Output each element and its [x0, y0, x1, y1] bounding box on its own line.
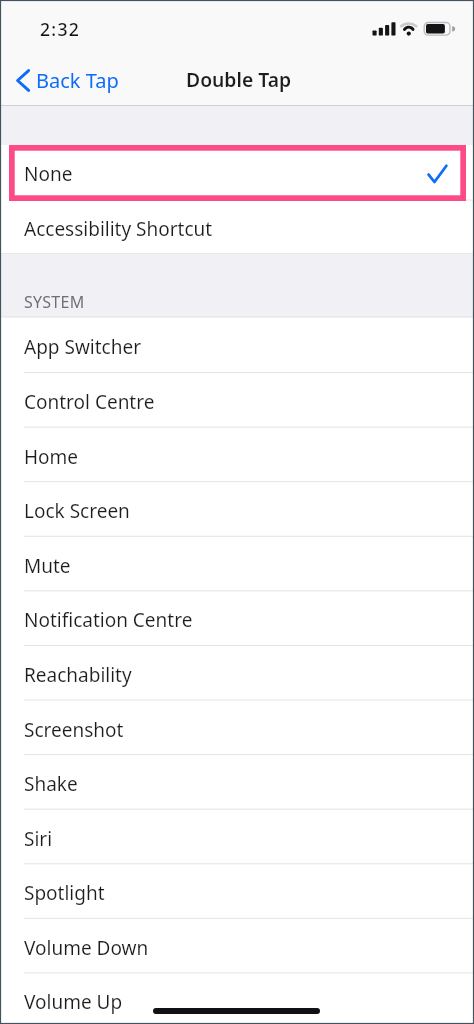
staticText: Home [24, 444, 79, 470]
staticText: Control Centre [24, 389, 155, 415]
button[interactable]: Mute [0, 536, 474, 591]
staticText: Mute [24, 553, 71, 579]
button[interactable]: Screenshot [0, 700, 474, 755]
button[interactable]: Volume Up [0, 972, 474, 1024]
staticText: Spotlight [24, 880, 105, 906]
staticText: Notification Centre [24, 607, 193, 633]
other: Selected [428, 165, 447, 183]
staticText: Volume Down [24, 935, 149, 961]
staticText: None [24, 161, 73, 187]
button[interactable]: Shake [0, 754, 474, 809]
staticText: 2:32 [40, 17, 81, 41]
button[interactable]: Control Centre [0, 372, 474, 427]
button[interactable]: Accessibility Shortcut [0, 200, 474, 255]
button[interactable]: Volume Down [0, 918, 474, 973]
staticText: Reachability [24, 662, 132, 688]
staticText: Siri [24, 826, 53, 852]
button[interactable]: Siri [0, 809, 474, 864]
button[interactable]: Notification Centre [0, 590, 474, 645]
staticText: Screenshot [24, 717, 124, 743]
button[interactable]: Spotlight [0, 863, 474, 918]
staticText: Double Tap [186, 66, 291, 92]
staticText: Volume Up [24, 989, 123, 1015]
staticText: Back Tap [36, 67, 119, 94]
staticText: SYSTEM [24, 291, 85, 313]
button[interactable]: Reachability [0, 645, 474, 700]
button[interactable]: App Switcher [0, 317, 474, 372]
staticText: Shake [24, 771, 78, 797]
button[interactable]: Back Tap [11, 63, 124, 97]
button[interactable]: Lock Screen [0, 481, 474, 536]
button[interactable]: Home [0, 427, 474, 482]
button[interactable]: None [0, 145, 474, 200]
staticText: App Switcher [24, 334, 142, 360]
staticText: Lock Screen [24, 498, 130, 524]
staticText: Accessibility Shortcut [24, 216, 213, 242]
